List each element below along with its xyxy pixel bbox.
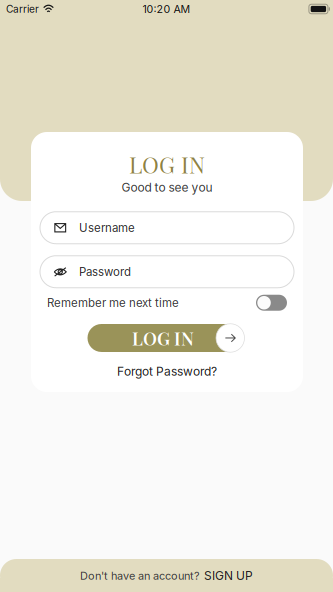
staticText: LOG IN	[132, 326, 194, 350]
staticText: Username	[79, 221, 135, 235]
staticText: Don't have an account?	[80, 569, 200, 582]
staticText: Good to see you	[121, 180, 212, 195]
button[interactable]: LOG IN	[87, 324, 246, 352]
staticText: LOG IN	[129, 149, 205, 179]
staticText: Carrier	[6, 3, 39, 15]
staticText: Remember me next time	[47, 296, 179, 310]
staticText: 10:20 AM	[142, 2, 190, 15]
staticText: Password	[79, 265, 131, 279]
button[interactable]: Password	[40, 256, 294, 288]
button[interactable]: Username	[40, 212, 294, 244]
staticText: Forgot Password?	[117, 364, 217, 379]
staticText: SIGN UP	[204, 568, 253, 583]
button[interactable]: Remember me next time toggle	[256, 295, 287, 311]
button[interactable]: Don't have an account?	[0, 559, 333, 592]
button[interactable]: Forgot Password?	[112, 359, 222, 384]
